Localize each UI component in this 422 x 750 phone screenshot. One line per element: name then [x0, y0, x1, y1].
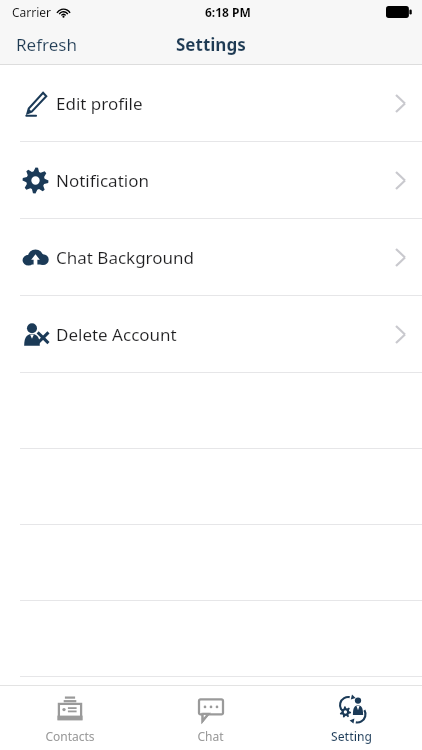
staticText: Carrier — [12, 4, 52, 20]
button[interactable]: Contacts — [0, 686, 140, 750]
button[interactable]: Setting — [281, 686, 422, 750]
staticText: Contacts — [45, 728, 95, 744]
button[interactable]: Chat — [140, 686, 281, 750]
button[interactable]: Notification — [0, 142, 422, 218]
button[interactable]: Refresh — [14, 29, 79, 60]
staticText: Setting — [331, 728, 372, 744]
staticText: Refresh — [16, 33, 77, 56]
button[interactable]: Delete Account — [0, 296, 422, 372]
staticText: Settings — [176, 33, 246, 56]
staticText: 6:18 PM — [205, 4, 251, 20]
staticText: Edit profile — [56, 92, 143, 115]
staticText: Notification — [56, 169, 149, 192]
button[interactable]: Edit profile — [0, 65, 422, 141]
button[interactable]: Chat Background — [0, 219, 422, 295]
staticText: Chat — [197, 728, 224, 744]
staticText: Delete Account — [56, 323, 177, 346]
staticText: Chat Background — [56, 246, 195, 269]
